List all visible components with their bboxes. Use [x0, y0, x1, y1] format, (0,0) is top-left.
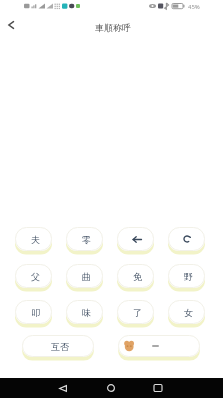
button[interactable]: Backspace	[117, 227, 154, 255]
button[interactable]: 父	[15, 264, 52, 292]
staticText: 曲	[82, 271, 91, 282]
staticText: 45%	[188, 3, 200, 11]
button[interactable]: Redo	[168, 227, 205, 255]
button[interactable]: 味	[66, 300, 103, 328]
button[interactable]: 免	[117, 264, 154, 292]
staticText: 了	[133, 307, 142, 318]
other: Backspace	[117, 227, 154, 251]
staticText: 夫	[31, 234, 40, 245]
button[interactable]: Recents	[144, 378, 172, 398]
button[interactable]: 零	[66, 227, 103, 255]
staticText: 免	[133, 271, 142, 282]
button[interactable]: 野	[168, 264, 205, 292]
button[interactable]: 互否	[22, 335, 94, 361]
button[interactable]: 夫	[15, 227, 52, 255]
staticText: 車順称呼	[95, 22, 131, 33]
button[interactable]: Back	[49, 378, 77, 398]
staticText: 零	[82, 234, 91, 245]
staticText: 女	[184, 307, 193, 318]
button[interactable]: 了	[117, 300, 154, 328]
other: Redo	[168, 227, 205, 251]
staticText: 味	[82, 307, 91, 318]
button[interactable]: Home	[97, 378, 125, 398]
button[interactable]	[118, 335, 200, 361]
staticText: 父	[31, 271, 40, 282]
staticText: 叩	[31, 307, 40, 318]
staticText: 互否	[51, 341, 69, 352]
button[interactable]: 女	[168, 300, 205, 328]
button[interactable]: Back	[2, 16, 20, 34]
button[interactable]: 叩	[15, 300, 52, 328]
staticText: 野	[184, 271, 193, 282]
button[interactable]: 曲	[66, 264, 103, 292]
